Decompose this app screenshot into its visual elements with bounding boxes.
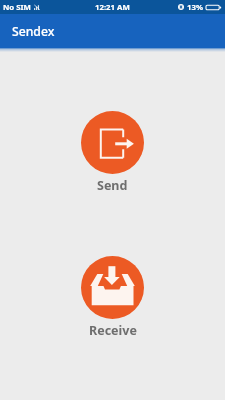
- staticText: Receive: [89, 322, 137, 339]
- staticText: Sendex: [12, 23, 55, 40]
- button[interactable]: Receive: [81, 256, 144, 319]
- staticText: Send: [97, 177, 128, 194]
- staticText: 13%: [187, 2, 203, 13]
- staticText: No SIM: [3, 2, 31, 13]
- staticText: 12:21 AM: [95, 2, 130, 13]
- button[interactable]: Send: [81, 111, 144, 174]
